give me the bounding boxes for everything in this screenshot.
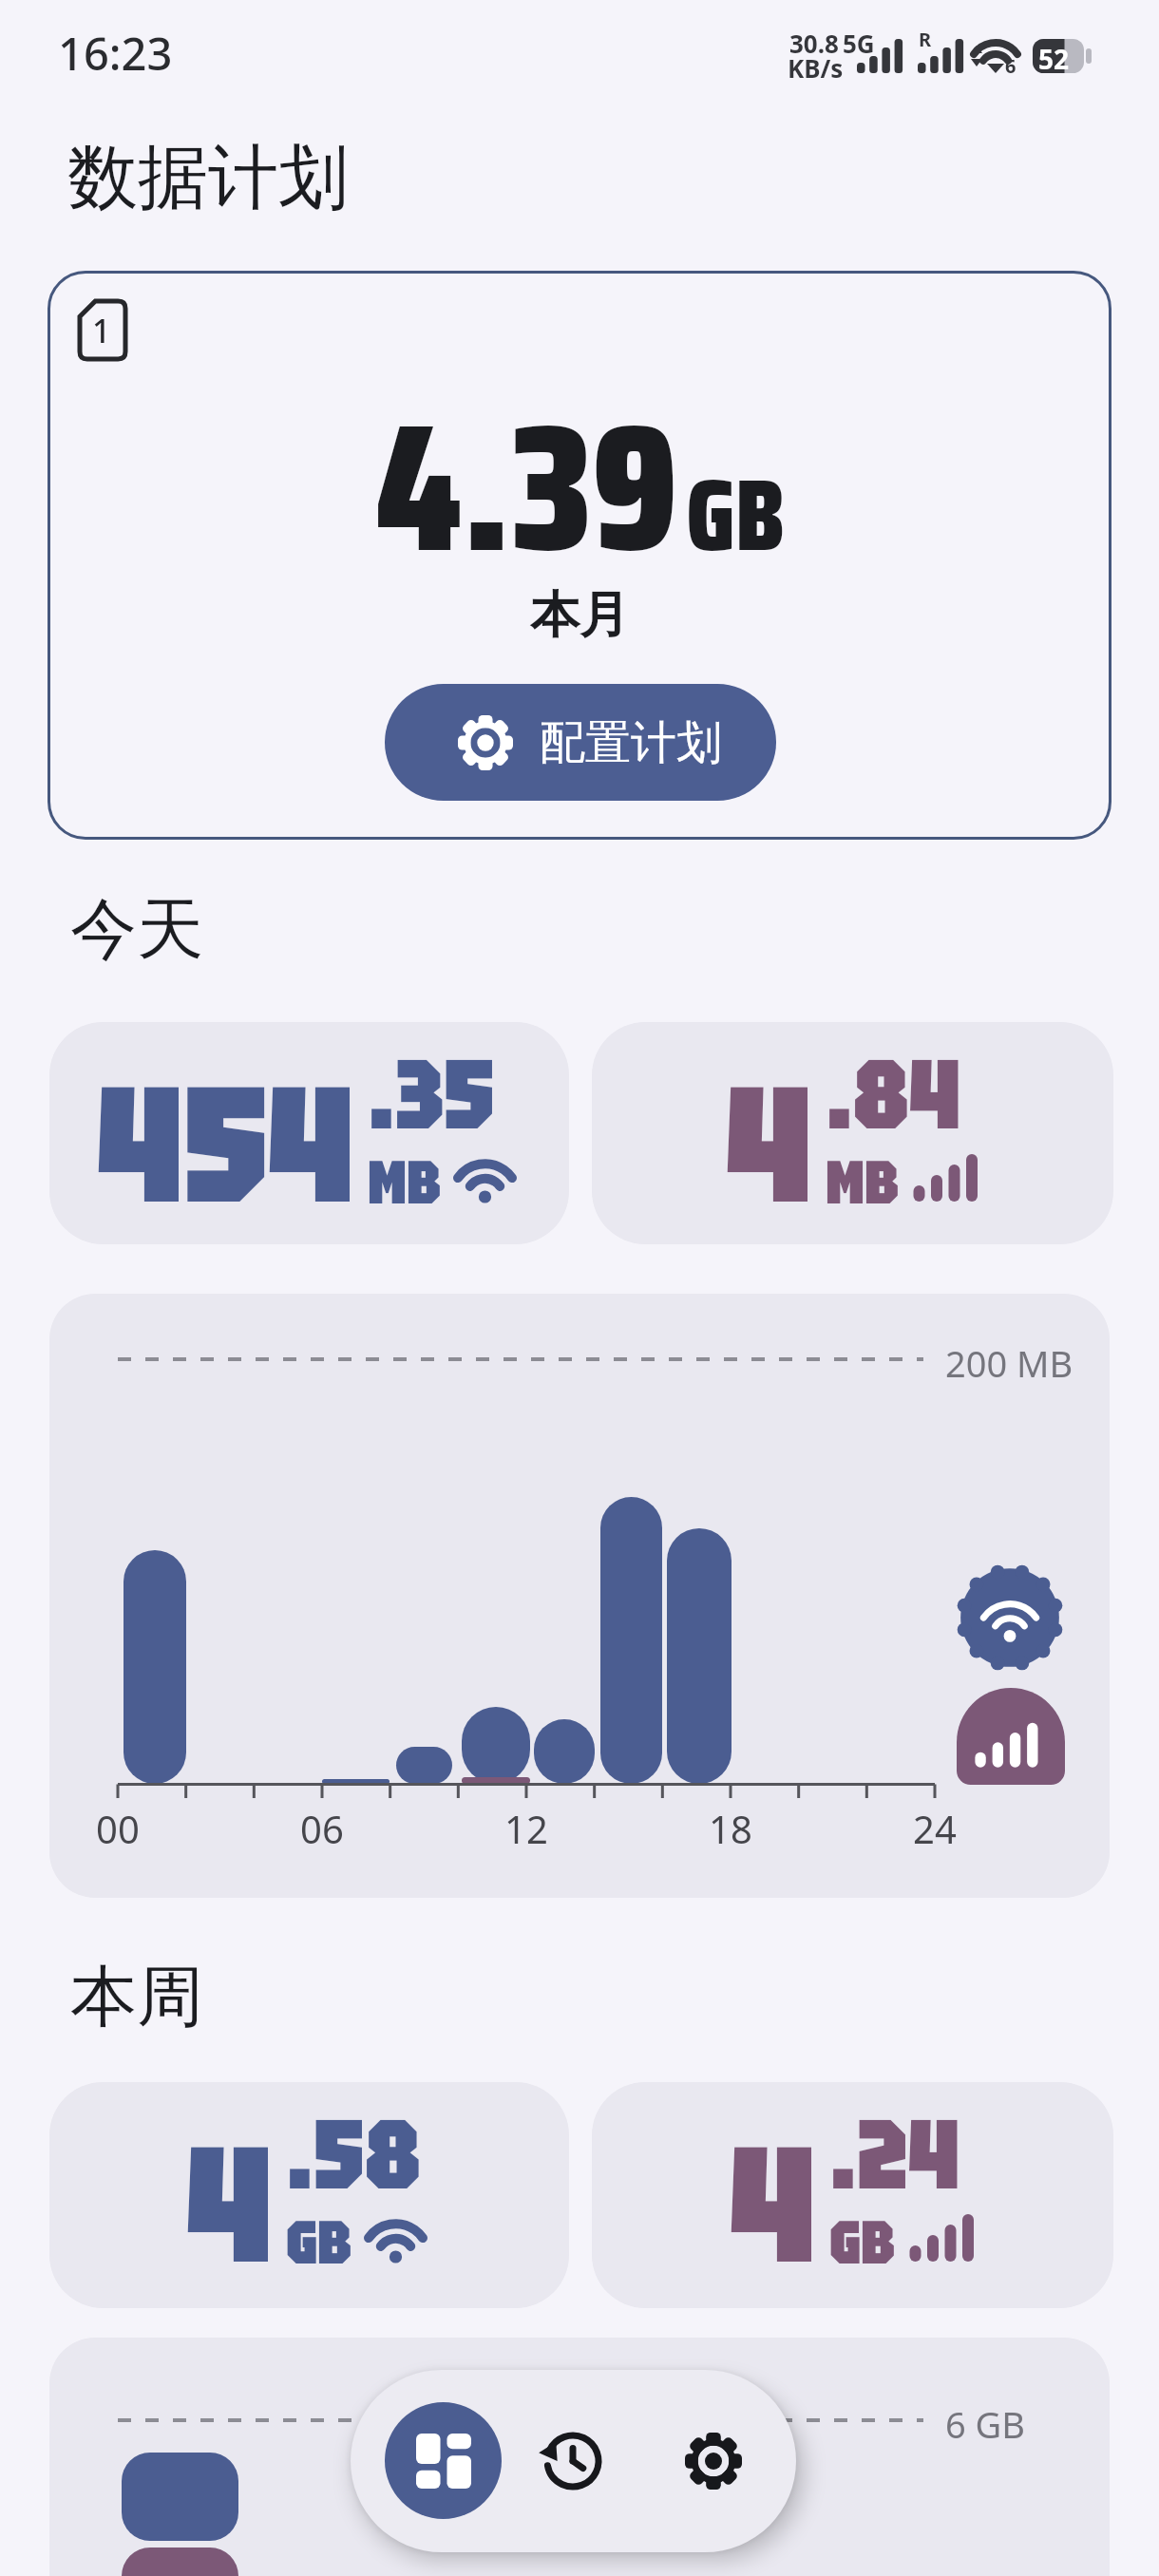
- staticText: 数据计划: [67, 134, 349, 222]
- staticText: 52: [1038, 41, 1070, 77]
- staticText: 今天: [70, 888, 203, 972]
- button[interactable]: [385, 2402, 502, 2519]
- staticText: 00: [96, 1803, 140, 1854]
- button[interactable]: [514, 2402, 631, 2519]
- button[interactable]: [655, 2402, 771, 2519]
- staticText: 24: [913, 1803, 957, 1854]
- staticText: R: [919, 27, 932, 52]
- staticText: 本月: [530, 584, 629, 647]
- staticText: 1: [92, 309, 111, 352]
- staticText: 06: [300, 1803, 344, 1854]
- staticText: 30.8: [789, 27, 839, 60]
- staticText: KB/s: [788, 51, 844, 85]
- staticText: 5G: [843, 27, 875, 60]
- staticText: 6 GB: [945, 2399, 1025, 2449]
- staticText: 18: [709, 1803, 752, 1854]
- staticText: 本周: [70, 1956, 203, 2039]
- staticText: 12: [504, 1803, 548, 1854]
- staticText: 配置计划: [540, 714, 722, 771]
- button[interactable]: 配置计划: [385, 684, 776, 801]
- staticText: 6: [1005, 53, 1016, 79]
- staticText: 200 MB: [945, 1338, 1073, 1388]
- staticText: 16:23: [58, 23, 173, 84]
